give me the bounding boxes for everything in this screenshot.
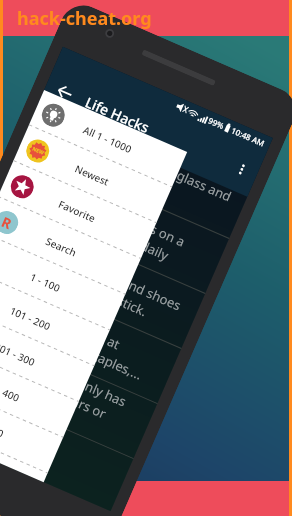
button[interactable]: All 1 - 1000: [29, 90, 187, 188]
button[interactable]: Navigate up: [50, 78, 79, 107]
button[interactable]: 32. If a product online only has reviews…: [0, 313, 157, 459]
staticText: 32. If a product online only has reviews…: [0, 319, 147, 453]
button[interactable]: Favorite: [0, 161, 156, 259]
staticText: 10:48 AM: [230, 124, 267, 149]
staticText: 301 - 400: [0, 375, 22, 405]
staticText: Favorite: [56, 197, 98, 225]
staticText: 29. Write a goal of yours on a mirror to…: [10, 163, 215, 280]
staticText: 401 - 500: [0, 411, 6, 441]
staticText: 28. Put your phone in a glass and it'll …: [33, 108, 239, 225]
button[interactable]: 201 - 300: [0, 304, 94, 402]
button[interactable]: 401 - 500: [0, 376, 63, 474]
staticText: 31. The best days to eat at McDonalds, W…: [0, 273, 167, 390]
button[interactable]: 1 - 100: [0, 233, 125, 331]
staticText: 30. Clean suede boots and shoes by rubbi…: [0, 218, 191, 335]
staticText: hack-cheat.org: [17, 6, 152, 31]
staticText: 101 - 200: [8, 303, 53, 333]
staticText: 99%: [207, 115, 226, 131]
button[interactable]: 31. The best days to eat at McDonalds, W…: [0, 258, 181, 404]
staticText: 201 - 300: [0, 339, 37, 369]
staticText: All 1 - 1000: [81, 123, 134, 156]
button[interactable]: 30. Clean suede boots and shoes by rubbi…: [0, 203, 205, 349]
staticText: Search: [44, 234, 79, 260]
staticText: Life Hacks: [82, 92, 152, 137]
staticText: NEW: [31, 145, 45, 157]
button[interactable]: 101 - 200: [0, 269, 109, 367]
staticText: R: [0, 212, 15, 233]
staticText: 1 - 100: [28, 270, 63, 295]
button[interactable]: Search: [0, 197, 140, 295]
button[interactable]: 301 - 400: [0, 340, 78, 438]
button[interactable]: More options: [227, 155, 256, 184]
staticText: Newest: [73, 161, 111, 189]
button[interactable]: 28. Put your phone in a glass and it'll …: [19, 93, 253, 239]
button[interactable]: 29. Write a goal of yours on a mirror to…: [0, 148, 229, 294]
button[interactable]: Newest: [13, 126, 172, 224]
